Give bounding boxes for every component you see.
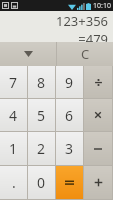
button[interactable]: 0 — [28, 166, 55, 199]
staticText: 1 — [9, 139, 18, 158]
button[interactable]: 5 — [28, 99, 55, 131]
button[interactable]: 1 — [0, 132, 27, 165]
button[interactable] — [84, 166, 112, 199]
button[interactable]: 8 — [28, 66, 55, 98]
button[interactable]: 7 — [0, 66, 27, 98]
button[interactable]: 9 — [56, 66, 83, 98]
staticText: 8 — [37, 73, 46, 92]
staticText: 0 — [37, 173, 46, 192]
staticText: 123+356 — [55, 12, 108, 30]
button[interactable] — [84, 99, 112, 131]
button[interactable]: 3 — [56, 132, 83, 165]
staticText: 4 — [9, 106, 18, 125]
staticText: 10:10 — [93, 1, 111, 11]
button[interactable]: 4 — [0, 99, 27, 131]
staticText: 5 — [37, 106, 46, 125]
staticText: 7 — [9, 73, 18, 92]
button[interactable]: 2 — [28, 132, 55, 165]
button[interactable] — [84, 132, 112, 165]
button[interactable]: C — [57, 42, 113, 66]
staticText: 3 — [65, 139, 74, 158]
staticText: . — [12, 173, 16, 192]
button[interactable] — [84, 66, 112, 98]
staticText: =479 — [78, 30, 108, 42]
button[interactable]: . — [0, 166, 27, 199]
button[interactable] — [56, 166, 83, 199]
staticText: 9 — [65, 73, 74, 92]
staticText: 2 — [37, 139, 46, 158]
staticText: C — [81, 45, 90, 63]
button[interactable]: 6 — [56, 99, 83, 131]
staticText: 6 — [65, 106, 74, 125]
button[interactable]: Show history — [0, 42, 56, 66]
